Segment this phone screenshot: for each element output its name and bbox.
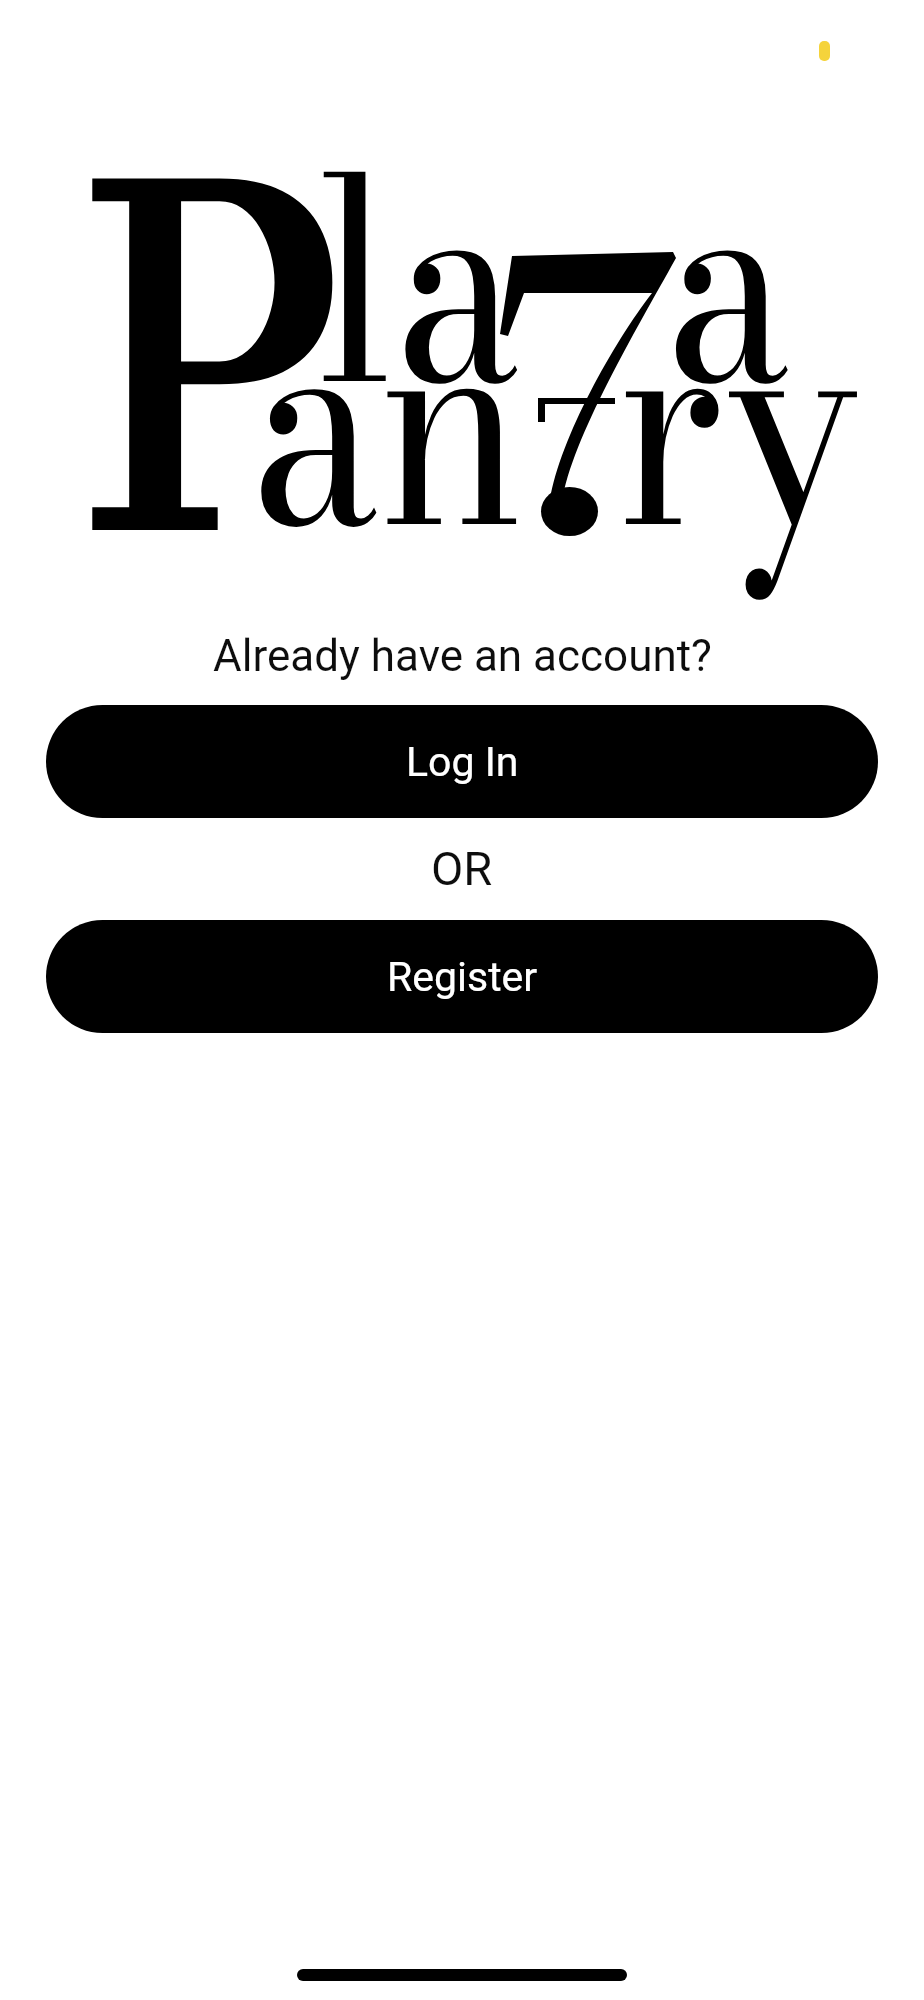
staticText: Already have an account? xyxy=(213,630,712,682)
button[interactable]: Register xyxy=(46,920,878,1033)
button[interactable]: Log In xyxy=(46,705,878,818)
staticText: P xyxy=(86,17,348,703)
staticText: Register xyxy=(387,953,538,1001)
staticText: a xyxy=(665,67,790,492)
staticText: OR xyxy=(431,841,493,896)
staticText: an xyxy=(250,200,525,639)
staticText: Log In xyxy=(406,738,519,786)
staticText: la xyxy=(315,67,519,492)
staticText: ry xyxy=(617,200,859,639)
